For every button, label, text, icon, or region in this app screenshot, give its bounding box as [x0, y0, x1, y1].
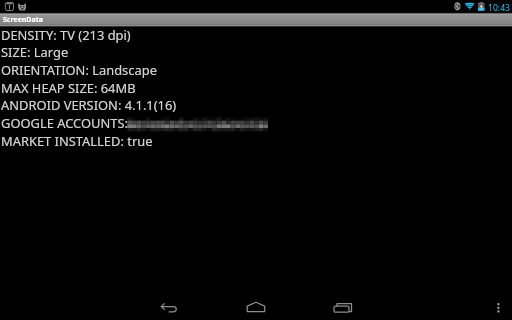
staticText: ORIENTATION: Landscape: [1, 61, 157, 79]
staticText: MAX HEAP SIZE: 64MB: [1, 79, 136, 97]
staticText: 10:43: [488, 2, 510, 14]
staticText: MARKET INSTALLED: true: [1, 132, 153, 150]
button[interactable]: Recent apps: [320, 288, 364, 320]
staticText: SIZE: Large: [1, 43, 69, 61]
staticText: DENSITY: TV (213 dpi): [1, 26, 131, 44]
staticText: GOOGLE ACCOUNTS:: [1, 114, 132, 132]
button[interactable]: Home: [234, 288, 278, 320]
button[interactable]: Back: [148, 288, 192, 320]
staticText: ANDROID VERSION: 4.1.1(16): [1, 96, 177, 114]
button[interactable]: More options: [488, 294, 510, 318]
staticText: ScreenData: [3, 15, 43, 25]
